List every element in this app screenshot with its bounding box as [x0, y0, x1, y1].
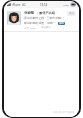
staticText: 微信产品组 [39, 11, 55, 15]
staticText: · [56, 11, 57, 15]
button[interactable]: Profile photo [4, 8, 79, 31]
staticText: 13:14 [40, 3, 48, 7]
button[interactable]: 关注 [67, 11, 76, 16]
staticText: 关注 [69, 12, 74, 15]
staticText: 看过的朋友这里，还有朋友，评论… [24, 21, 57, 25]
staticText: 100% [63, 3, 70, 6]
staticText: ｜ [36, 11, 39, 15]
staticText: 来自 微信产品体验 [53, 110, 75, 114]
button[interactable]: Profile photo [7, 11, 21, 25]
staticText: 今天 14:05 [24, 26, 36, 29]
staticText: 来自微信 [41, 26, 51, 29]
staticText: 4G [22, 3, 26, 7]
staticText: 详情 [59, 22, 64, 25]
button[interactable]: 详情 [58, 22, 65, 25]
staticText: iPhone [12, 3, 21, 7]
staticText: 张晓慧 [24, 11, 35, 15]
button[interactable]: More options [62, 26, 65, 29]
staticText: 评论功能已上线 · 三种方式随意选 [24, 16, 65, 20]
